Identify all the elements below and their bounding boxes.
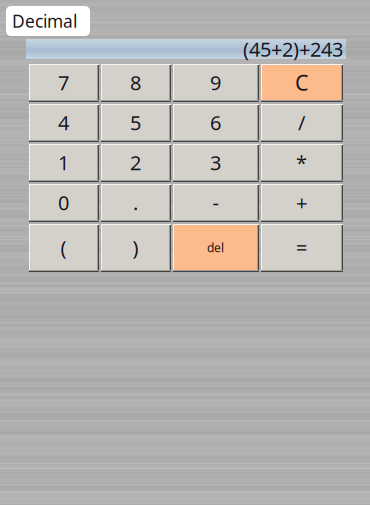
button[interactable]: 7 (29, 64, 99, 102)
button[interactable]: 3 (173, 144, 259, 182)
staticText: - (212, 189, 218, 216)
button[interactable]: . (101, 184, 171, 222)
button[interactable]: = (261, 224, 343, 272)
staticText: 5 (130, 109, 141, 136)
button[interactable]: 0 (29, 184, 99, 222)
staticText: 0 (58, 189, 69, 216)
button[interactable]: ( (29, 224, 99, 272)
staticText: del (207, 239, 224, 255)
staticText: 2 (130, 149, 141, 176)
button[interactable]: Decimal (6, 6, 90, 36)
button[interactable]: 4 (29, 104, 99, 142)
staticText: . (133, 189, 138, 216)
staticText: = (296, 234, 307, 261)
button[interactable]: / (261, 104, 343, 142)
button[interactable]: 2 (101, 144, 171, 182)
staticText: 3 (210, 149, 221, 176)
button[interactable]: 9 (173, 64, 259, 102)
staticText: 7 (58, 69, 69, 96)
button[interactable]: ) (101, 224, 171, 272)
staticText: 1 (58, 149, 69, 176)
staticText: ) (132, 234, 138, 261)
button[interactable]: 6 (173, 104, 259, 142)
staticText: C (295, 68, 308, 97)
staticText: Decimal (12, 9, 77, 32)
button[interactable]: + (261, 184, 343, 222)
staticText: 9 (210, 69, 221, 96)
staticText: 4 (58, 109, 69, 136)
button[interactable]: 1 (29, 144, 99, 182)
button[interactable]: - (173, 184, 259, 222)
button[interactable]: 5 (101, 104, 171, 142)
staticText: / (298, 109, 305, 136)
staticText: 8 (130, 69, 141, 96)
staticText: + (296, 189, 307, 216)
button[interactable]: C (261, 64, 343, 102)
staticText: 6 (210, 109, 221, 136)
staticText: (45+2)+243 (243, 36, 343, 62)
staticText: ( (60, 234, 66, 261)
button[interactable]: * (261, 144, 343, 182)
button[interactable]: 8 (101, 64, 171, 102)
button[interactable]: del (173, 224, 259, 272)
staticText: * (296, 149, 307, 176)
